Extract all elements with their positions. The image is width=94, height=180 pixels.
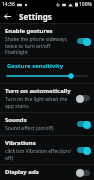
staticText: Vibrations <box>5 139 36 147</box>
staticText: 14:36 <box>2 1 15 8</box>
button[interactable]: Back <box>0 9 14 23</box>
button[interactable]: Sounds <box>0 113 94 135</box>
staticText: click btn Vibration effect(on/off) <box>5 148 73 161</box>
button[interactable]: Gesture sensitivity slider <box>0 59 94 83</box>
staticText: Sounds <box>5 116 27 124</box>
staticText: Display ads <box>5 168 39 176</box>
staticText: Turn on automatically <box>5 87 71 95</box>
staticText: Shake the phone sideways twice to turn o… <box>5 36 73 55</box>
staticText: Settings <box>19 11 52 22</box>
staticText: Gesture sensitivity <box>7 62 64 70</box>
button[interactable]: Display ads <box>0 165 94 180</box>
button[interactable]: Enable gestures <box>0 24 94 58</box>
staticText: 100% <box>79 1 92 8</box>
staticText: Enable gestures <box>5 27 53 35</box>
button[interactable]: Turn on automatically <box>0 84 94 112</box>
staticText: Sound effect (on/off) <box>5 125 54 132</box>
button[interactable]: Vibrations <box>0 136 94 164</box>
staticText: Turn on the light when the app starts <box>5 96 73 109</box>
